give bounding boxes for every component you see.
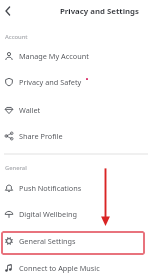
button[interactable]: [1, 231, 145, 255]
button[interactable]: Digital Wellbeing: [0, 200, 150, 227]
staticText: Privacy and Safety: [19, 77, 82, 87]
staticText: Connect to Apple Music: [19, 263, 100, 273]
button[interactable]: Connect to Apple Music: [0, 254, 150, 279]
button[interactable]: Back: [0, 2, 17, 20]
staticText: General: [5, 164, 27, 172]
staticText: Digital Wellbeing: [19, 209, 78, 219]
button[interactable]: Privacy and Safety: [0, 68, 150, 95]
button[interactable]: Share Profile: [0, 122, 150, 149]
button[interactable]: Manage My Account: [0, 42, 150, 69]
staticText: Wallet: [19, 105, 41, 115]
button[interactable]: Push Notifications: [0, 174, 150, 201]
staticText: Share Profile: [19, 131, 63, 141]
button[interactable]: Wallet: [0, 96, 150, 123]
staticText: General Settings: [19, 236, 76, 246]
button[interactable]: General Settings: [0, 227, 150, 254]
staticText: Push Notifications: [19, 183, 82, 193]
staticText: Account: [5, 33, 28, 41]
staticText: Manage My Account: [19, 51, 89, 61]
staticText: Privacy and Settings: [60, 6, 139, 17]
